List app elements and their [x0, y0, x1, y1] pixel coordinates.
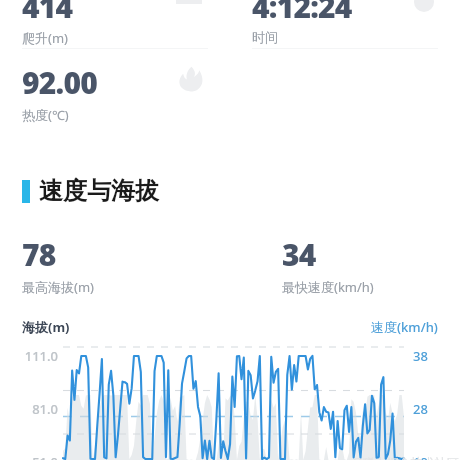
button[interactable]: 78	[22, 234, 230, 296]
staticText: 81.0	[6, 400, 58, 418]
staticText: 92.00	[22, 62, 97, 103]
staticText: 34	[282, 234, 316, 275]
staticText: 111.0	[6, 347, 58, 365]
staticText: 时间	[252, 29, 278, 45]
staticText: 28	[413, 400, 428, 418]
staticText: 38	[413, 347, 428, 365]
other: 热度	[178, 66, 204, 92]
staticText: @稀土掘金技术社区	[352, 454, 459, 460]
button[interactable]: 92.00	[22, 62, 208, 124]
staticText: 最高海拔(m)	[22, 278, 94, 296]
staticText: 4:12:24	[252, 0, 352, 27]
staticText: 19	[413, 453, 428, 460]
staticText: 爬升(m)	[22, 29, 68, 47]
staticText: 414	[22, 0, 73, 27]
staticText: 海拔(m)	[22, 318, 70, 336]
staticText: 速度与海拔	[39, 176, 159, 206]
button[interactable]: 速度与海拔	[0, 176, 460, 206]
staticText: 热度(℃)	[22, 106, 69, 124]
staticText: 78	[22, 234, 56, 275]
staticText: 速度(km/h)	[371, 318, 438, 336]
button[interactable]: 34	[282, 234, 460, 296]
staticText: 51.0	[6, 453, 58, 460]
staticText: 最快速度(km/h)	[282, 278, 374, 296]
